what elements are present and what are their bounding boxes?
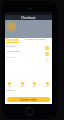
button[interactable]: Option — [32, 82, 37, 87]
staticText: Confirm order — [20, 98, 37, 101]
button[interactable]: Checkout — [5, 15, 52, 20]
button[interactable]: Option — [45, 82, 50, 87]
button[interactable]: Select option — [44, 57, 49, 62]
staticText: Total fare — [6, 89, 16, 92]
button[interactable]: Select option — [44, 45, 49, 50]
button[interactable]: Select option — [44, 51, 49, 56]
staticText: Economy — [6, 45, 16, 48]
button[interactable]: Home — [25, 107, 34, 116]
staticText: Your ride — [6, 38, 19, 42]
button[interactable]: Option — [7, 82, 12, 87]
staticText: Business — [6, 56, 16, 59]
staticText: Checkout — [21, 16, 36, 20]
button[interactable]: Confirm order — [7, 97, 50, 102]
staticText: Comfort class — [6, 50, 21, 53]
staticText: arriving in 4 minutes — [25, 38, 46, 41]
button[interactable]: Option — [20, 82, 25, 87]
